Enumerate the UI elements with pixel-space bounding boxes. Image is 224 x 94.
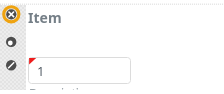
staticText: 1: [37, 62, 45, 80]
staticText: Description: [29, 85, 94, 90]
button[interactable]: Error: [1, 4, 22, 25]
button[interactable]: Disabled: [5, 59, 17, 71]
staticText: Item: [28, 8, 62, 27]
button[interactable]: Info: [5, 36, 17, 48]
button[interactable]: 1: [28, 57, 131, 84]
